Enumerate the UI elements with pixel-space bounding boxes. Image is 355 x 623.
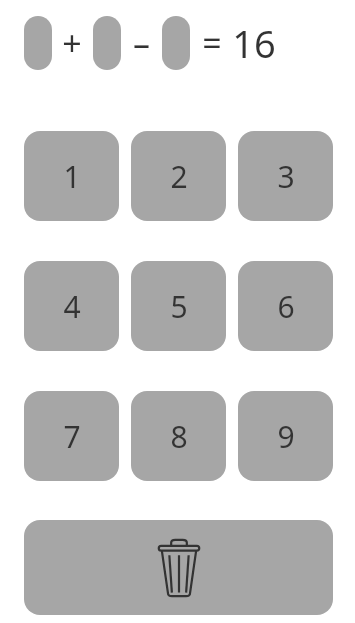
staticText: 5 — [170, 286, 188, 327]
staticText: + — [62, 20, 82, 66]
button[interactable]: 2 — [131, 131, 226, 221]
staticText: 9 — [277, 416, 295, 457]
button[interactable]: Empty slot — [24, 16, 52, 70]
button[interactable]: 6 — [238, 261, 333, 351]
staticText: 1 — [63, 156, 81, 197]
staticText: 7 — [63, 416, 81, 457]
button[interactable]: Empty slot — [162, 16, 190, 70]
staticText: 16 — [232, 17, 276, 69]
button[interactable]: 5 — [131, 261, 226, 351]
staticText: = — [202, 20, 222, 66]
staticText: 3 — [277, 156, 295, 197]
button[interactable]: 9 — [238, 391, 333, 481]
button[interactable]: Clear — [24, 520, 333, 615]
staticText: 8 — [170, 416, 188, 457]
staticText: 2 — [170, 156, 188, 197]
staticText: – — [133, 20, 150, 66]
button[interactable]: 4 — [24, 261, 119, 351]
button[interactable]: 7 — [24, 391, 119, 481]
button[interactable]: 1 — [24, 131, 119, 221]
staticText: 6 — [277, 286, 295, 327]
button[interactable]: 8 — [131, 391, 226, 481]
button[interactable]: 3 — [238, 131, 333, 221]
button[interactable]: Empty slot — [93, 16, 121, 70]
staticText: 4 — [63, 286, 81, 327]
